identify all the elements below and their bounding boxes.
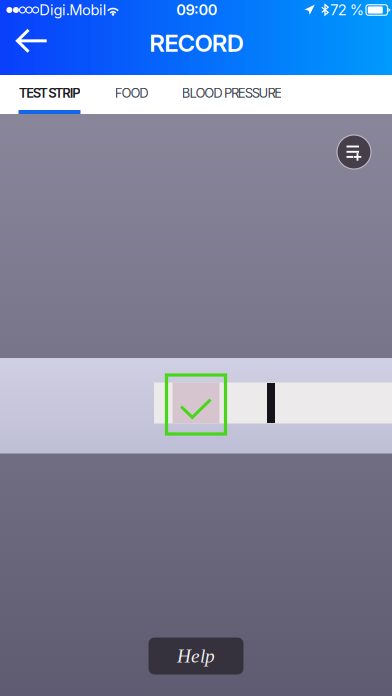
- button[interactable]: BLOOD PRESSURE: [177, 75, 287, 114]
- staticText: FOOD: [115, 85, 148, 101]
- staticText: TEST STRIP: [19, 85, 80, 101]
- staticText: 09:00: [176, 1, 218, 19]
- button[interactable]: TEST STRIP: [18, 75, 80, 114]
- button[interactable]: FOOD: [108, 75, 154, 114]
- staticText: BLOOD PRESSURE: [182, 85, 282, 101]
- button[interactable]: Back: [0, 18, 64, 64]
- staticText: RECORD: [149, 28, 244, 57]
- staticText: Help: [177, 645, 215, 667]
- staticText: 72 %: [330, 1, 364, 19]
- button[interactable]: Add record: [337, 135, 371, 169]
- staticText: Digi.Mobil: [39, 1, 107, 19]
- button[interactable]: Help: [148, 637, 243, 674]
